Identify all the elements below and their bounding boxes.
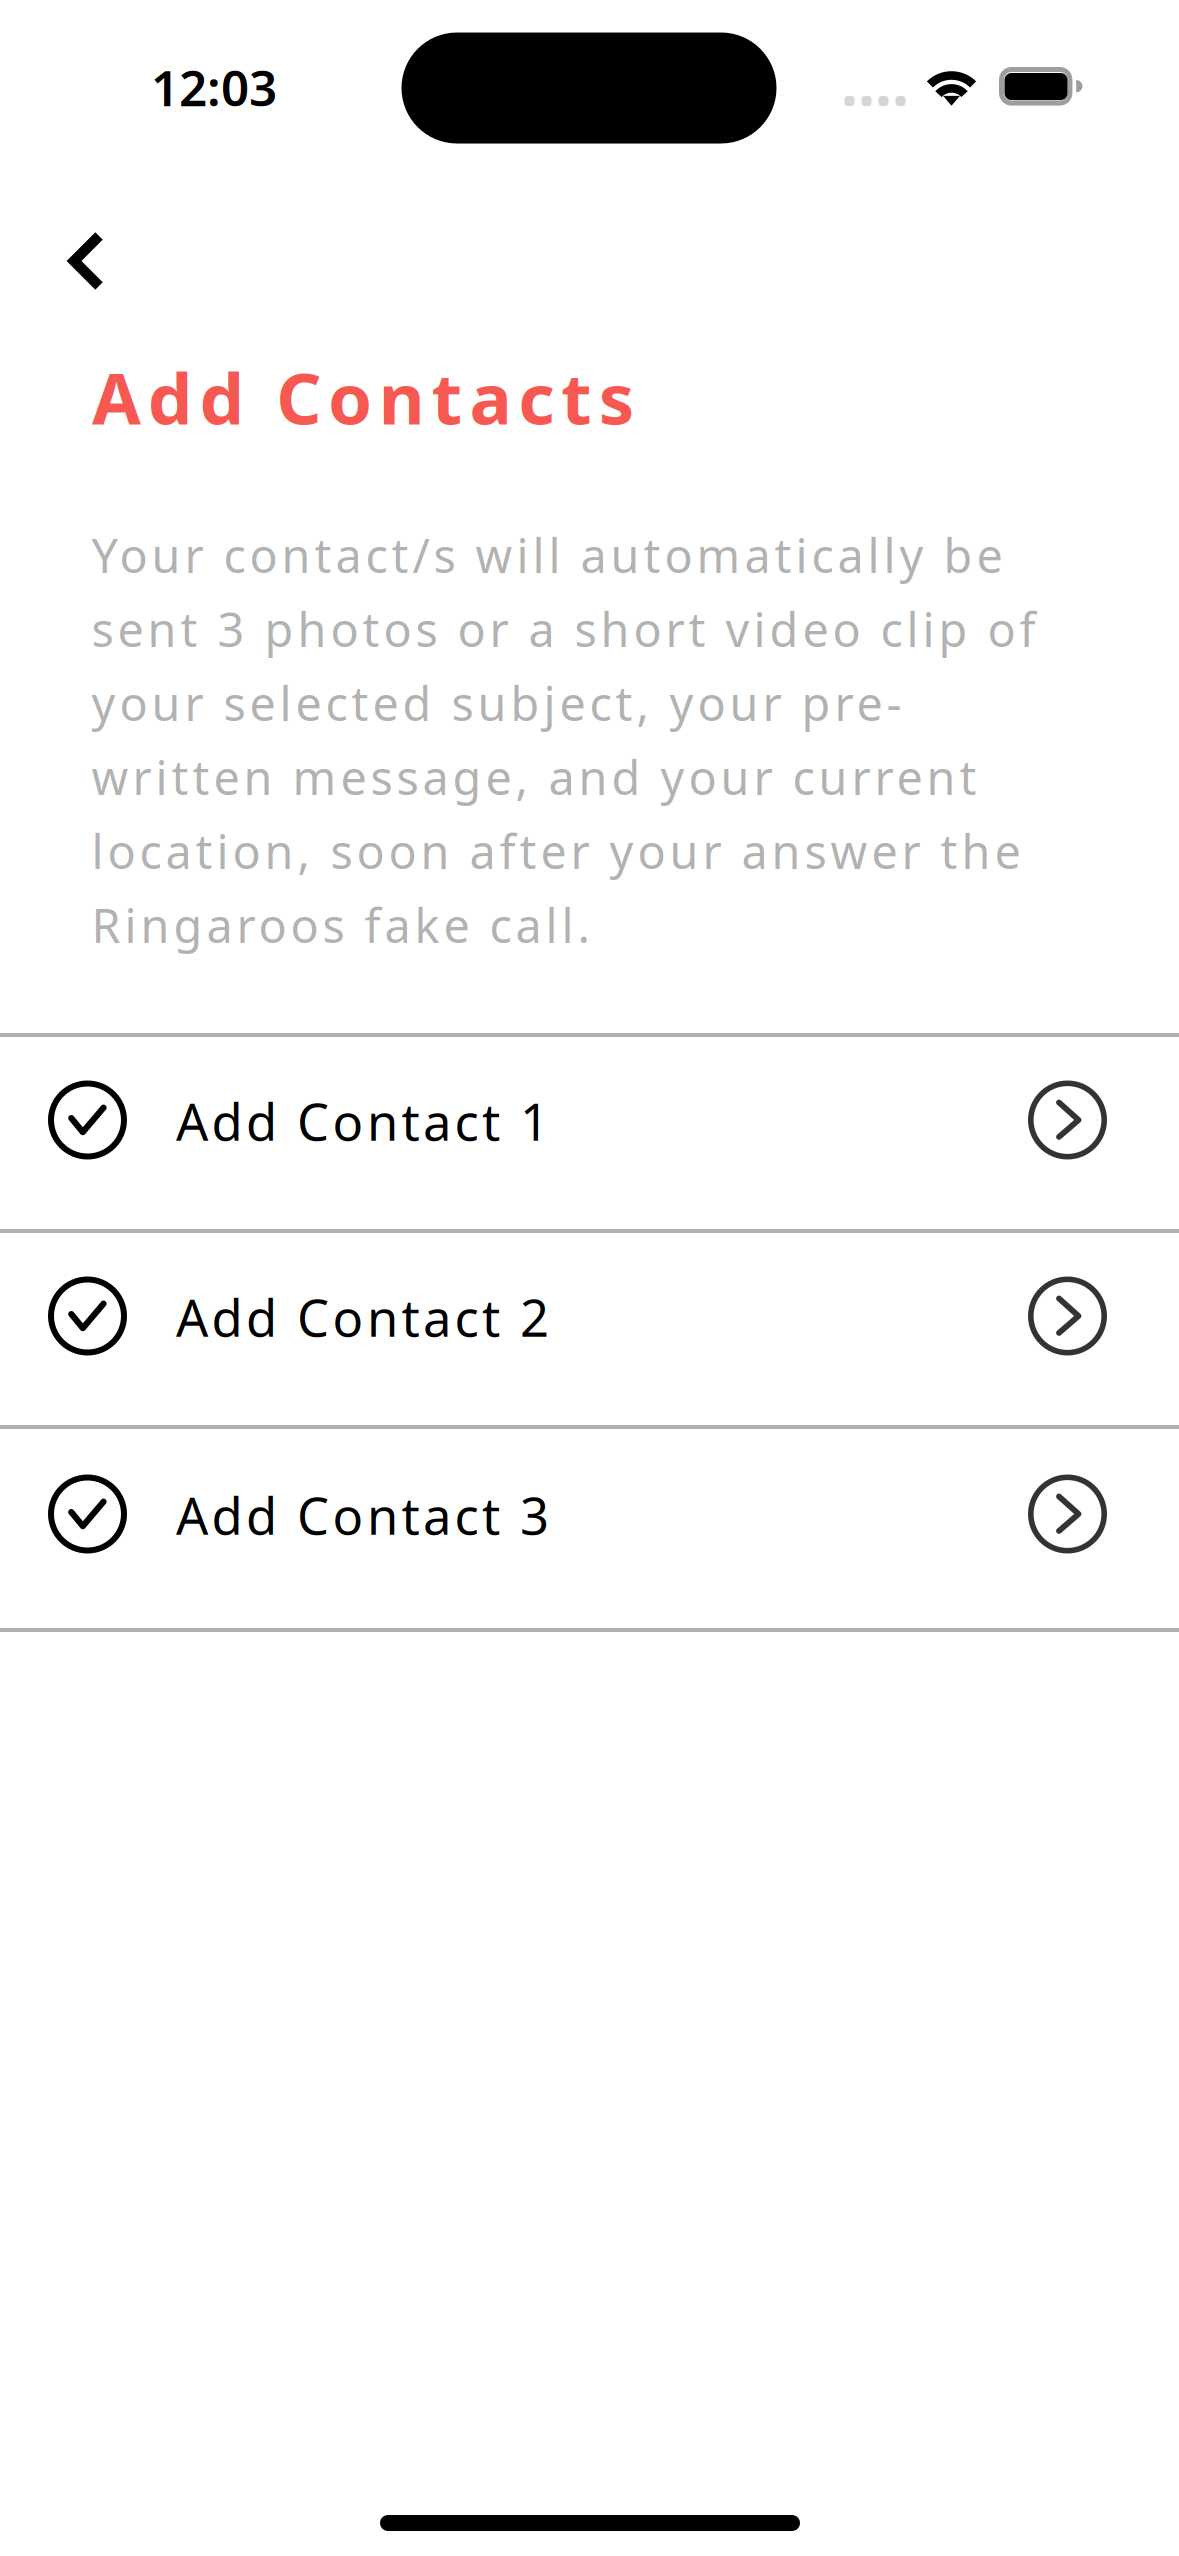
staticText: your selected subject, your pre- (91, 672, 901, 734)
button[interactable]: Add Contact 3 (0, 1429, 1179, 1625)
button[interactable]: Add Contact 2 (0, 1231, 1179, 1427)
staticText: Ringaroos fake call. (91, 894, 590, 956)
button[interactable]: Add Contact 1 (0, 1035, 1179, 1231)
staticText: Your contact/s will automatically be (91, 524, 1002, 586)
staticText: sent 3 photos or a short video clip of (91, 598, 1035, 660)
button[interactable]: Back (32, 201, 142, 321)
staticText: Add Contact 1 (176, 1087, 549, 1155)
staticText: written message, and your current (91, 746, 976, 808)
staticText: 12:03 (151, 54, 277, 120)
staticText: location, soon after your answer the (91, 820, 1020, 882)
staticText: Add Contact 2 (176, 1283, 549, 1351)
staticText: Add Contacts (92, 350, 634, 444)
staticText: Add Contact 3 (176, 1481, 549, 1549)
